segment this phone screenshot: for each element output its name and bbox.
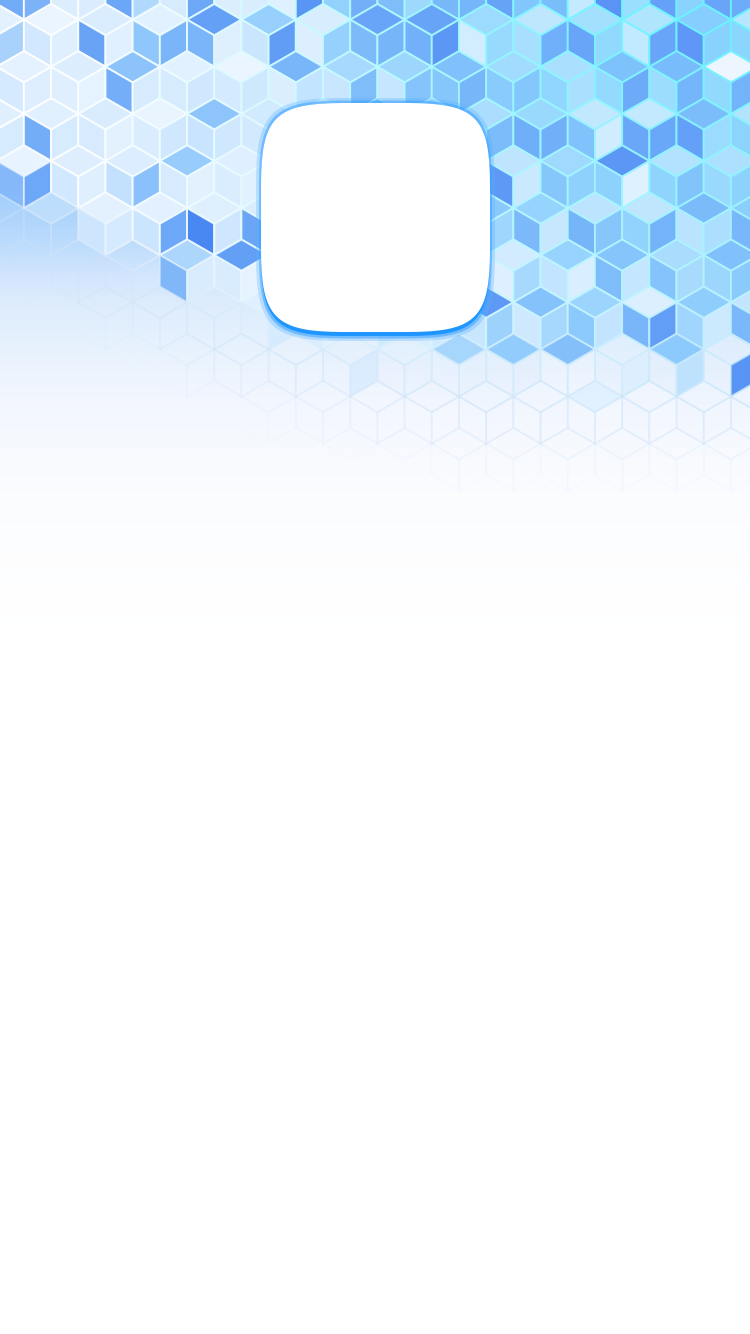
button[interactable]: App icon (256, 98, 495, 341)
